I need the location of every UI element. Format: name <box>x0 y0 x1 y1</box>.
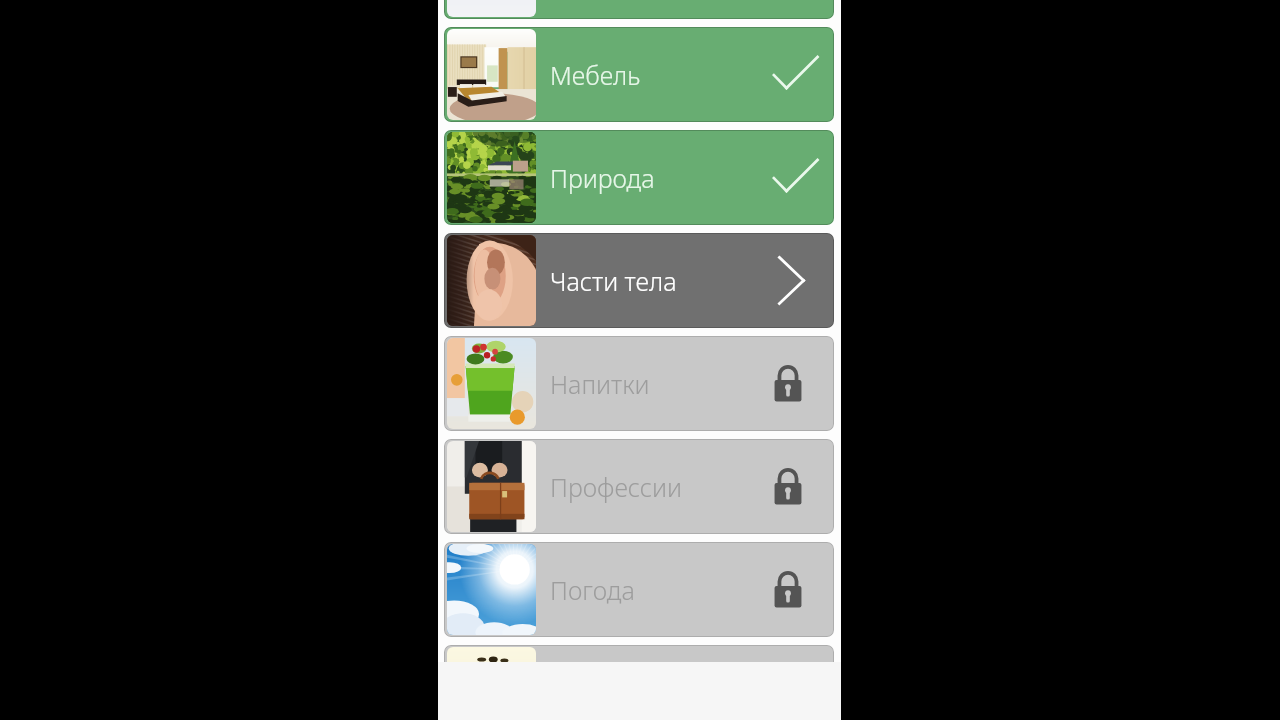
other: Locked <box>774 468 802 505</box>
staticText: Профессии <box>550 470 683 504</box>
other: Completed <box>773 159 818 192</box>
button[interactable]: Части тела <box>444 233 834 328</box>
button[interactable]: Погода <box>444 542 834 637</box>
other: Locked <box>774 571 802 608</box>
button[interactable]: Мебель <box>444 27 834 122</box>
staticText: Природа <box>550 161 655 195</box>
button[interactable]: Животные <box>444 0 834 19</box>
other: Completed <box>773 56 818 89</box>
button[interactable]: Еда <box>444 645 834 662</box>
staticText: Погода <box>550 573 635 607</box>
staticText: Мебель <box>550 58 641 92</box>
staticText: Части тела <box>550 264 677 298</box>
staticText: Напитки <box>550 367 650 401</box>
other: Open <box>778 256 805 305</box>
button[interactable]: Природа <box>444 130 834 225</box>
other: Locked <box>774 365 802 402</box>
button[interactable]: Напитки <box>444 336 834 431</box>
button[interactable]: Профессии <box>444 439 834 534</box>
